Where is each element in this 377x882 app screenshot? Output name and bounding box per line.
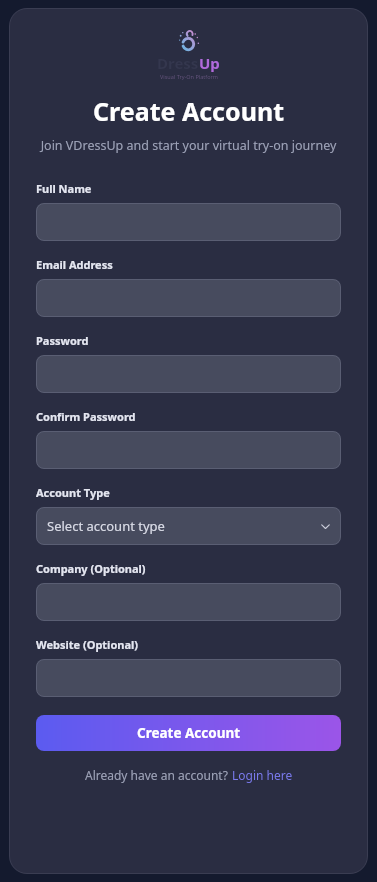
button[interactable] — [36, 203, 341, 241]
staticText: Website (Optional) — [36, 637, 139, 652]
button[interactable] — [36, 355, 341, 393]
staticText: Confirm Password — [36, 409, 136, 424]
staticText: Select account type — [47, 517, 165, 535]
staticText: Create Account — [36, 94, 341, 128]
staticText: Company (Optional) — [36, 561, 146, 576]
button[interactable]: Login here — [232, 767, 293, 783]
staticText: Dress — [157, 53, 199, 73]
button[interactable] — [36, 583, 341, 621]
staticText: Account Type — [36, 485, 110, 500]
staticText: Up — [199, 53, 220, 73]
button[interactable] — [36, 431, 341, 469]
button[interactable] — [36, 279, 341, 317]
staticText: Password — [36, 333, 89, 348]
button[interactable]: Select account type — [36, 507, 341, 545]
staticText: Create Account — [137, 724, 241, 742]
staticText: Full Name — [36, 181, 92, 196]
staticText: Already have an account? — [85, 767, 232, 783]
staticText: Visual Try-On Platform — [160, 73, 218, 80]
button[interactable]: Create Account — [36, 715, 341, 751]
staticText: Login here — [232, 767, 293, 783]
staticText: Join VDressUp and start your virtual try… — [36, 137, 341, 154]
other: Open account type list — [321, 522, 330, 531]
button[interactable] — [36, 659, 341, 697]
staticText: Email Address — [36, 257, 113, 272]
